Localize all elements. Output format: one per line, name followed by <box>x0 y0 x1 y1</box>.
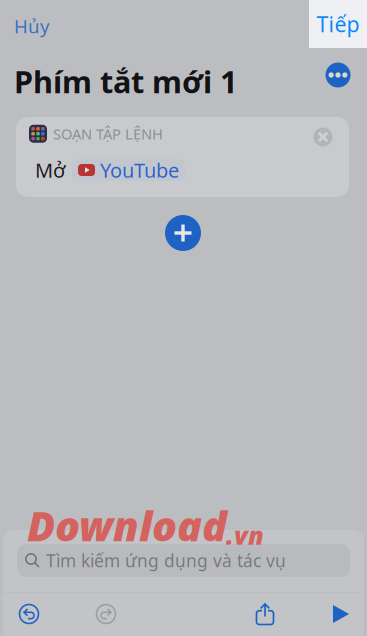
staticText: YouTube <box>100 157 179 183</box>
button[interactable]: Tiếp <box>309 0 367 48</box>
button[interactable]: Undo <box>7 592 51 636</box>
staticText: Phím tắt mới 1 <box>14 61 238 102</box>
staticText: Tìm kiếm ứng dụng và tác vụ <box>46 549 286 572</box>
button[interactable]: Remove action <box>309 123 337 151</box>
button[interactable]: Redo <box>84 592 128 636</box>
button[interactable]: Run shortcut <box>319 592 363 636</box>
button[interactable]: More options <box>321 58 355 92</box>
button[interactable]: Tìm kiếm ứng dụng và tác vụ <box>17 544 350 577</box>
button[interactable]: Add action <box>159 209 207 257</box>
staticText: Hủy <box>14 14 50 38</box>
staticText: .vn <box>226 518 264 552</box>
button[interactable]: Hủy <box>0 9 60 43</box>
staticText: SOẠN TẬP LỆNH <box>53 124 163 143</box>
button[interactable]: Share <box>243 592 287 636</box>
staticText: Tiếp <box>316 10 359 38</box>
staticText: Download <box>27 497 227 553</box>
staticText: Mở <box>35 157 65 183</box>
